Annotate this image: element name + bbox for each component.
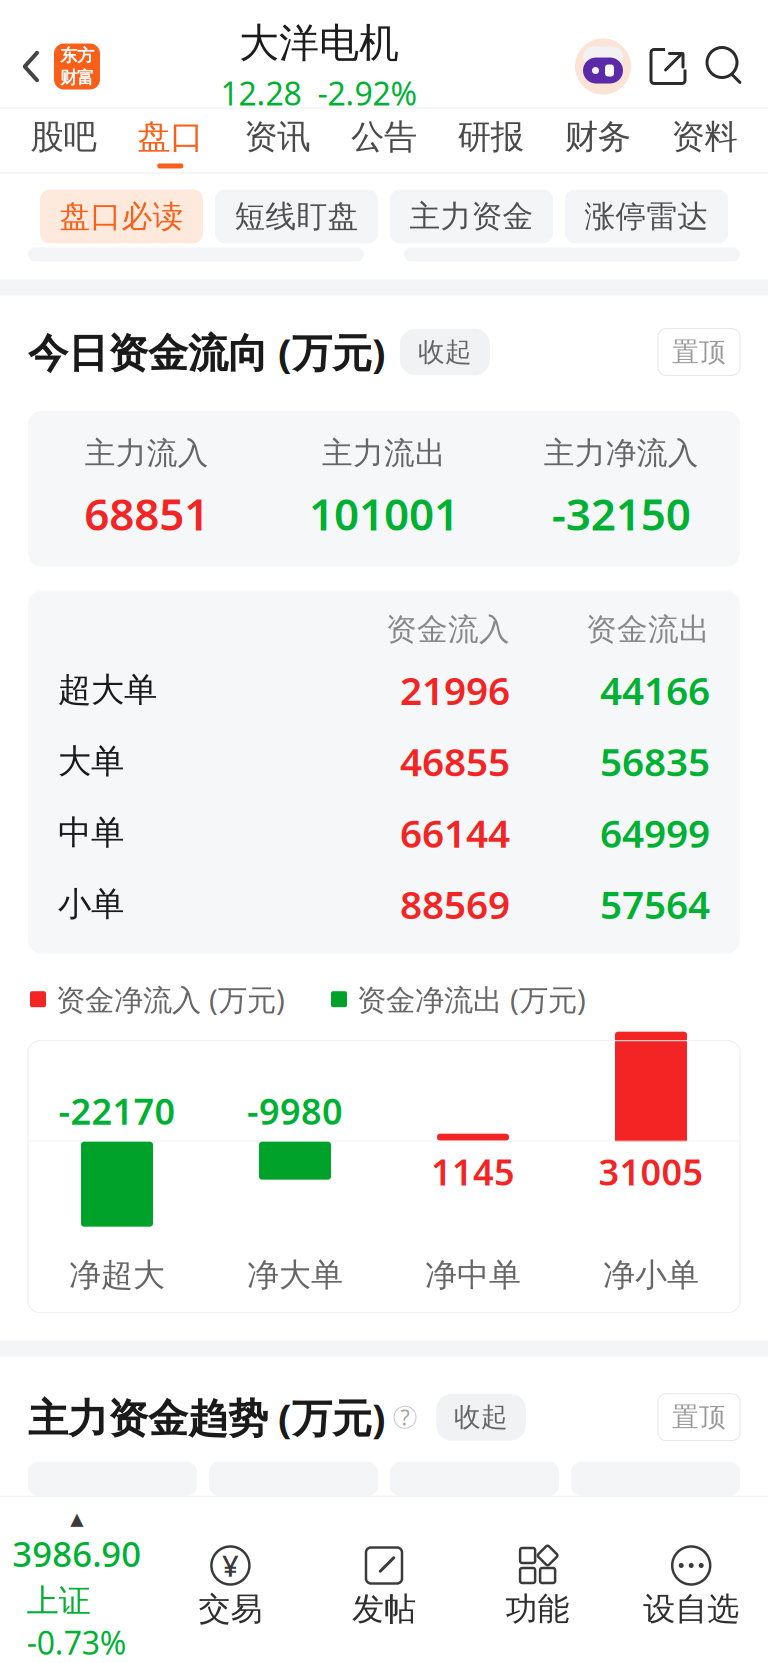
staticText: 盘口必读 — [59, 198, 183, 235]
button[interactable]: 研报 — [437, 108, 544, 172]
button[interactable]: Back — [0, 43, 100, 89]
staticText: -22170 — [58, 1087, 175, 1135]
staticText: 31005 — [598, 1148, 703, 1195]
button[interactable]: 股吧 — [10, 108, 117, 172]
button[interactable]: 收起 — [400, 329, 490, 375]
staticText: 发帖 — [352, 1589, 416, 1629]
staticText: 101001 — [309, 484, 459, 543]
staticText: -32150 — [552, 484, 691, 543]
button[interactable]: 收起 — [436, 1394, 526, 1441]
button[interactable]: Share — [648, 46, 688, 86]
staticText: 大洋电机 — [239, 19, 399, 68]
staticText: 44166 — [600, 664, 710, 716]
staticText: 东方 — [60, 45, 94, 66]
button[interactable]: 发帖 — [307, 1543, 461, 1629]
staticText: 置顶 — [672, 336, 726, 368]
staticText: ▲ — [70, 1509, 83, 1528]
button[interactable]: 主力资金 — [390, 189, 553, 243]
staticText: 68851 — [84, 484, 209, 543]
staticText: 88569 — [400, 878, 510, 930]
staticText: 公告 — [351, 116, 417, 157]
staticText: 资料 — [672, 116, 738, 157]
staticText: 净大单 — [247, 1255, 343, 1295]
staticText: 46855 — [400, 736, 510, 787]
staticText: 功能 — [506, 1589, 570, 1629]
button[interactable]: 财务 — [544, 108, 651, 172]
button[interactable]: 盘口 — [117, 108, 224, 172]
staticText: 收起 — [418, 336, 472, 368]
staticText: 57564 — [600, 878, 710, 930]
button[interactable]: 置顶 — [658, 1394, 740, 1441]
button[interactable]: 置顶 — [658, 329, 740, 375]
staticText: 盘口 — [137, 116, 203, 157]
staticText: -9980 — [247, 1087, 343, 1135]
staticText: 超大单 — [58, 669, 157, 710]
staticText: 净中单 — [425, 1255, 521, 1295]
staticText: 短线盯盘 — [234, 198, 358, 235]
staticText: 净超大 — [69, 1255, 165, 1295]
staticText: 资金净流入 (万元) — [56, 980, 285, 1019]
staticText: 主力流入 — [85, 435, 209, 472]
button[interactable]: 设自选 — [614, 1543, 768, 1629]
staticText: 12.28 -2.92% — [220, 72, 417, 114]
staticText: 主力流出 — [322, 435, 446, 472]
button[interactable]: 短线盯盘 — [215, 189, 378, 243]
staticText: 66144 — [400, 807, 510, 858]
staticText: 小单 — [58, 884, 124, 924]
button[interactable]: ¥ — [154, 1543, 307, 1629]
staticText: ? — [400, 1403, 409, 1431]
staticText: 资金流出 — [586, 611, 710, 648]
staticText: 资金净流出 (万元) — [357, 980, 586, 1019]
button[interactable]: 资料 — [651, 108, 758, 172]
staticText: 中单 — [58, 812, 124, 853]
staticText: 财富 — [60, 67, 94, 88]
staticText: 3986.90 — [12, 1530, 141, 1576]
staticText: 资讯 — [244, 116, 310, 157]
staticText: 64999 — [600, 807, 710, 858]
staticText: 21996 — [400, 664, 510, 716]
staticText: 56835 — [600, 736, 710, 787]
button[interactable]: 盘口必读 — [40, 189, 203, 243]
staticText: ¥ — [222, 1546, 239, 1585]
staticText: 交易 — [198, 1589, 262, 1629]
staticText: 涨停雷达 — [584, 198, 708, 235]
button[interactable]: 公告 — [331, 108, 437, 172]
staticText: 大单 — [58, 741, 124, 782]
staticText: 主力资金 — [409, 198, 533, 235]
button[interactable]: AI assistant — [574, 37, 632, 95]
staticText: 置顶 — [672, 1401, 726, 1434]
staticText: 财务 — [565, 116, 631, 157]
staticText: 股吧 — [30, 116, 96, 157]
staticText: 收起 — [454, 1401, 508, 1434]
staticText: 研报 — [458, 116, 524, 157]
staticText: 1145 — [431, 1148, 515, 1195]
staticText: 主力资金趋势 (万元) — [28, 1391, 386, 1444]
staticText: 今日资金流向 (万元) — [28, 325, 386, 378]
staticText: 上证 -0.73% — [27, 1578, 127, 1663]
button[interactable]: Search — [704, 45, 746, 87]
staticText: 资金流入 — [386, 611, 510, 648]
button[interactable]: 资讯 — [224, 108, 331, 172]
staticText: 主力净流入 — [544, 435, 699, 472]
staticText: 设自选 — [643, 1589, 739, 1629]
staticText: 净小单 — [603, 1255, 699, 1295]
button[interactable]: 涨停雷达 — [565, 189, 728, 243]
button[interactable]: ▲ — [0, 1509, 154, 1663]
button[interactable]: 功能 — [461, 1543, 614, 1629]
